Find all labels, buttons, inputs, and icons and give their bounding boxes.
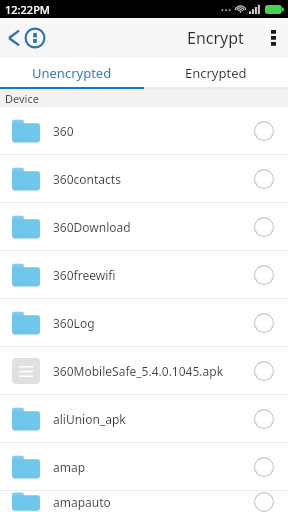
staticText: Unencrypted: [32, 64, 112, 82]
button[interactable]: 360Download: [0, 203, 288, 250]
staticText: Encrypt: [187, 27, 244, 49]
button[interactable]: 360Log: [0, 299, 288, 346]
button[interactable]: amap: [0, 443, 288, 490]
staticText: 360MobileSafe_5.4.0.1045.apk: [53, 363, 254, 379]
staticText: amapauto: [53, 494, 254, 510]
staticText: 360contacts: [53, 171, 254, 187]
button[interactable]: aliUnion_apk: [0, 395, 288, 442]
staticText: Encrypted: [185, 64, 247, 82]
staticText: aliUnion_apk: [53, 411, 254, 427]
staticText: 360Download: [53, 219, 254, 235]
button[interactable]: 360freewifi: [0, 251, 288, 298]
staticText: amap: [53, 459, 254, 475]
staticText: 12:22PM: [5, 2, 50, 17]
button[interactable]: 360: [0, 107, 288, 154]
button[interactable]: More options: [258, 18, 288, 58]
button[interactable]: 360contacts: [0, 155, 288, 202]
staticText: 360: [53, 123, 254, 139]
staticText: 360Log: [53, 315, 254, 331]
staticText: 360freewifi: [53, 267, 254, 283]
button[interactable]: amapauto: [0, 491, 288, 512]
button[interactable]: Encrypted: [144, 58, 288, 87]
staticText: Device: [5, 91, 39, 106]
button[interactable]: Back: [0, 18, 54, 58]
button[interactable]: Unencrypted: [0, 58, 144, 87]
button[interactable]: 360MobileSafe_5.4.0.1045.apk: [0, 347, 288, 394]
